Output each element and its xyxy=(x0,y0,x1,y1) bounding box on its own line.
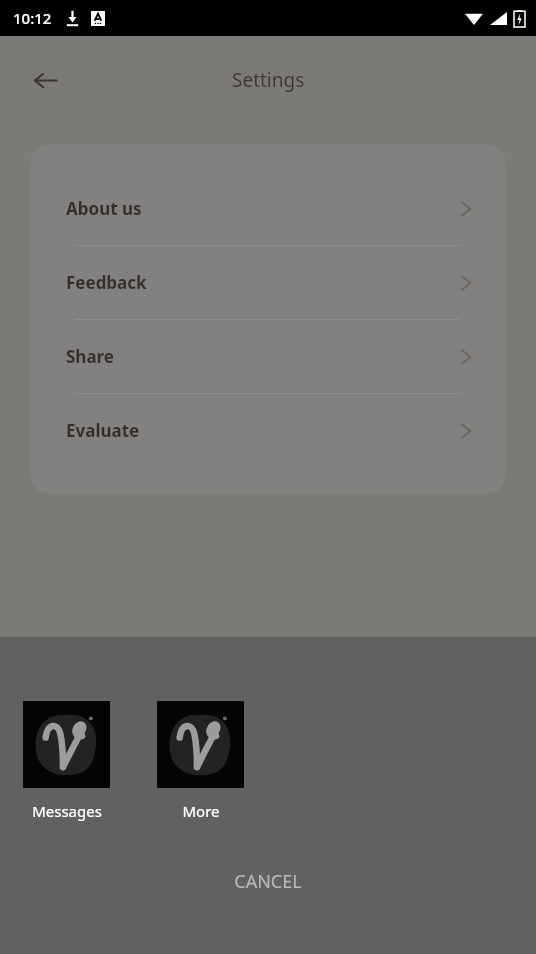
staticText: Messages xyxy=(32,801,102,821)
button[interactable]: Feedback xyxy=(30,246,506,320)
button[interactable]: Messages xyxy=(23,701,110,821)
button[interactable]: CANCEL xyxy=(0,844,536,918)
staticText: Feedback xyxy=(66,271,147,294)
staticText: 10:12 xyxy=(13,8,52,28)
staticText: Share xyxy=(66,345,115,368)
button[interactable]: More xyxy=(157,701,244,821)
button[interactable]: Back xyxy=(22,57,68,103)
staticText: About us xyxy=(66,197,142,220)
button[interactable]: Evaluate xyxy=(30,394,506,467)
staticText: Settings xyxy=(232,67,305,93)
button[interactable]: Share xyxy=(30,320,506,394)
staticText: More xyxy=(182,801,220,821)
button[interactable]: About us xyxy=(30,172,506,246)
staticText: Evaluate xyxy=(66,419,140,442)
staticText: CANCEL xyxy=(234,869,302,894)
